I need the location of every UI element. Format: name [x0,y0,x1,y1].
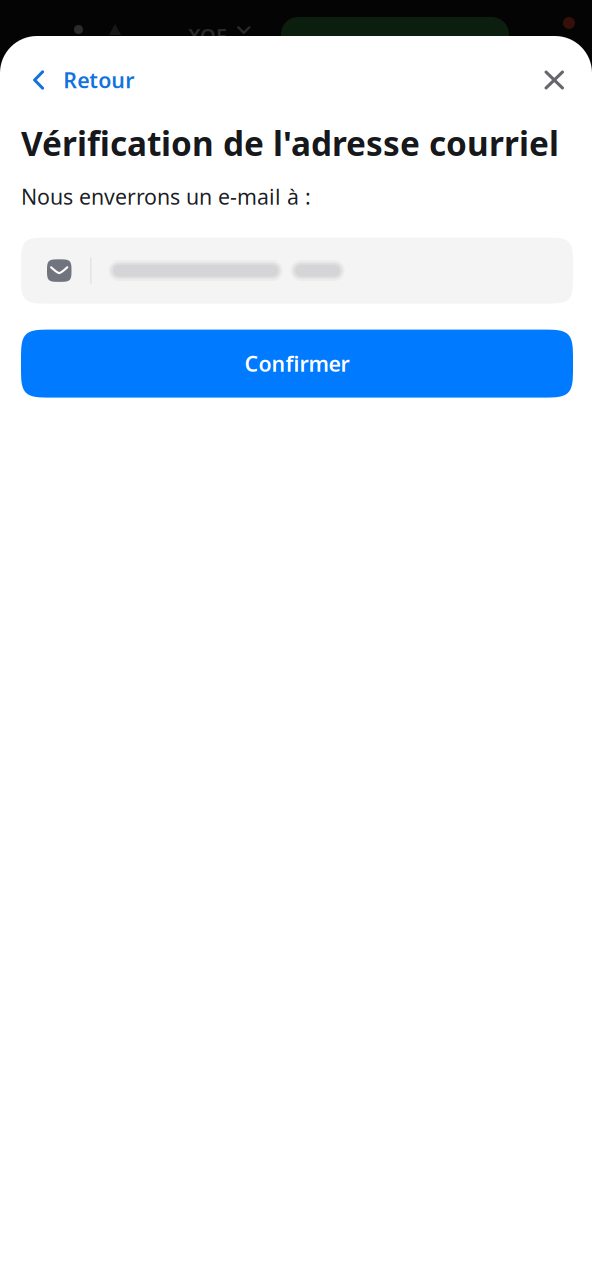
staticText: Nous enverrons un e-mail à : [21,182,311,211]
staticText: Vérification de l'adresse courriel [21,121,559,165]
staticText: XOF [188,22,227,49]
staticText: Retour [63,66,134,94]
button[interactable]: Confirmer [21,330,573,398]
staticText: Confirmer [244,349,349,378]
button[interactable]: Fermer [522,54,592,106]
button[interactable]: Retour [0,54,148,106]
